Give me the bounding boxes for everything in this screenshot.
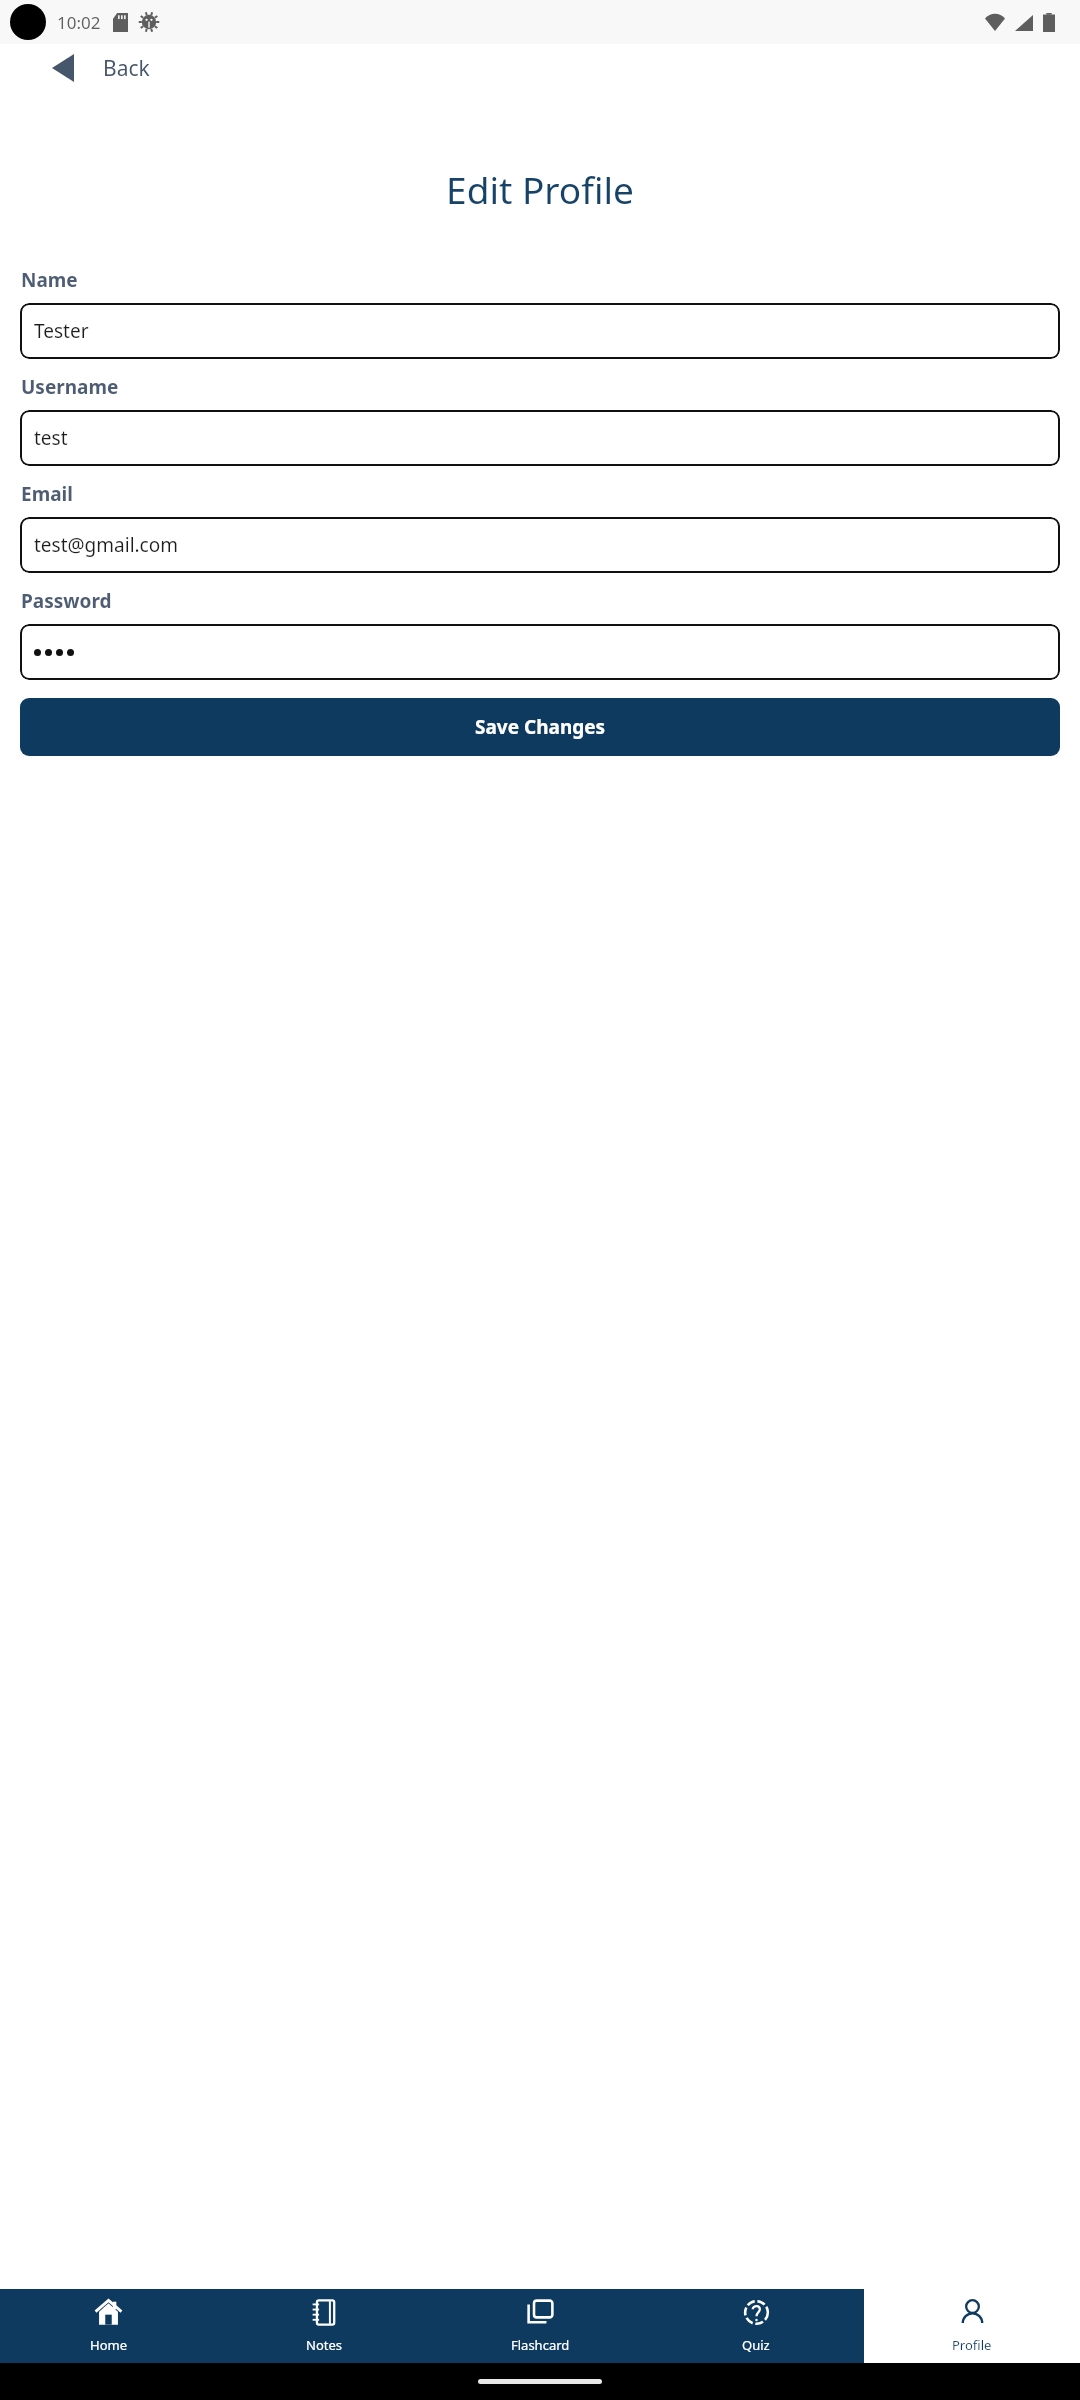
button[interactable]: Notes <box>216 2289 432 2363</box>
other: Profile <box>959 2299 986 2326</box>
button[interactable]: Profile <box>864 2289 1080 2363</box>
staticText: Save Changes <box>475 714 606 740</box>
staticText: Notes <box>306 2336 342 2354</box>
other: Home <box>95 2299 122 2326</box>
staticText: Quiz <box>742 2336 770 2354</box>
staticText: Password <box>21 588 112 614</box>
staticText: 10:02 <box>57 11 101 34</box>
other: Flashcard <box>527 2299 554 2326</box>
button[interactable]: Quiz <box>648 2289 864 2363</box>
staticText: Profile <box>952 2336 992 2354</box>
staticText: Home <box>90 2336 127 2354</box>
button[interactable]: test <box>20 410 1060 466</box>
button[interactable]: Save Changes <box>20 698 1060 756</box>
staticText: Flashcard <box>511 2336 570 2354</box>
staticText: Tester <box>34 318 89 344</box>
staticText: Username <box>21 374 119 400</box>
button[interactable]: Back <box>0 44 1080 92</box>
staticText: test <box>34 425 68 451</box>
staticText: Email <box>21 481 73 507</box>
button[interactable]: Tester <box>20 303 1060 359</box>
other: Quiz <box>743 2299 770 2326</box>
other: Back <box>52 54 74 82</box>
staticText: test@gmail.com <box>34 532 179 558</box>
button[interactable]: Flashcard <box>432 2289 648 2363</box>
staticText: Name <box>21 267 78 293</box>
button[interactable]: Home <box>0 2289 216 2363</box>
staticText: Back <box>103 54 150 83</box>
staticText: Edit Profile <box>0 164 1080 214</box>
other: Notes <box>311 2299 338 2326</box>
button[interactable]: test@gmail.com <box>20 517 1060 573</box>
button[interactable] <box>20 624 1060 680</box>
